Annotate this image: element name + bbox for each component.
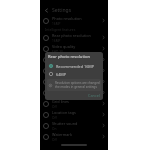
staticText: On xyxy=(52,127,57,131)
button[interactable]: 64MP xyxy=(45,70,103,78)
button[interactable]: Location tags xyxy=(40,109,108,120)
button[interactable]: Back xyxy=(43,7,50,14)
staticText: On xyxy=(52,61,57,65)
staticText: Grid lines xyxy=(52,99,69,104)
staticText: Photo resolution xyxy=(52,16,82,21)
button[interactable]: Shot suggestions xyxy=(40,65,108,76)
staticText: 16MP xyxy=(52,22,61,26)
staticText: Location tags xyxy=(52,110,76,115)
staticText: 64MP xyxy=(56,72,67,77)
staticText: Intelligent features xyxy=(45,27,76,32)
button[interactable]: Watermark xyxy=(40,131,108,142)
staticText: Rear photo resolution xyxy=(48,54,90,60)
staticText: FHD 30 xyxy=(52,50,63,54)
staticText: Settings xyxy=(52,7,72,14)
staticText: Off xyxy=(52,105,57,109)
button[interactable]: Rear photo resolution xyxy=(40,32,108,43)
button[interactable]: Video quality xyxy=(40,43,108,54)
staticText: Shot suggestions xyxy=(52,66,83,71)
staticText: Recommended 16MP xyxy=(56,64,95,69)
button[interactable]: Tracking auto-focus xyxy=(40,76,108,87)
staticText: Watermark xyxy=(52,132,72,137)
staticText: Off xyxy=(52,138,57,142)
button[interactable]: Cancel xyxy=(85,91,103,100)
staticText: Tracking auto-focus xyxy=(52,77,87,82)
staticText: Shutter sound xyxy=(52,121,78,126)
staticText: 16MP xyxy=(52,39,61,43)
button[interactable]: Video stabilisation xyxy=(40,87,108,98)
button[interactable]: Grid lines xyxy=(40,98,108,109)
staticText: Cancel xyxy=(88,93,100,98)
button[interactable]: Recommended 16MP xyxy=(45,62,103,70)
button[interactable]: Shutter sound xyxy=(40,120,108,131)
staticText: Resolution options are changed to one of… xyxy=(55,81,100,89)
staticText: Off xyxy=(52,116,57,120)
staticText: On xyxy=(52,83,57,87)
button[interactable]: Photo resolution xyxy=(40,15,108,26)
button[interactable]: Scene optimiser xyxy=(40,54,108,65)
staticText: Video quality xyxy=(52,44,76,49)
staticText: Video stabilisation xyxy=(52,88,85,93)
staticText: Scene optimiser xyxy=(52,55,81,60)
staticText: Off xyxy=(52,72,57,76)
staticText: Rear photo resolution xyxy=(52,33,91,38)
